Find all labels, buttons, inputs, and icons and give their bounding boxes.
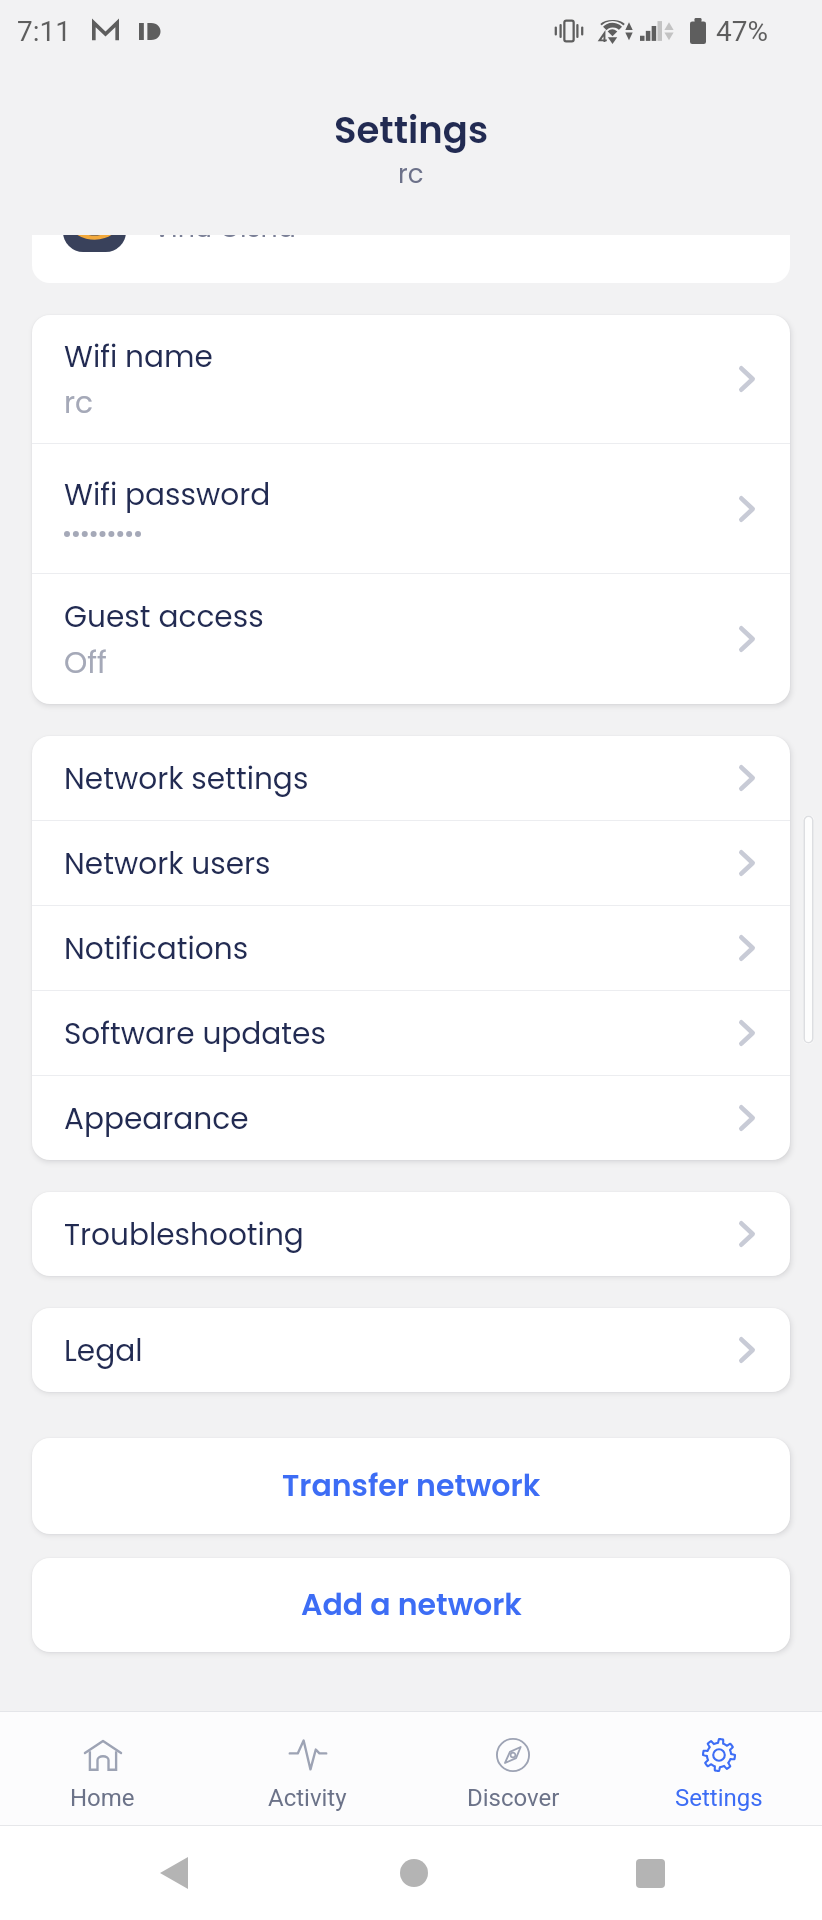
staticText: 47% — [716, 15, 768, 48]
staticText: Legal — [64, 1330, 739, 1371]
staticText: Settings — [334, 104, 489, 156]
staticText: Off — [64, 642, 107, 683]
button[interactable]: Legal — [32, 1308, 790, 1392]
button[interactable]: Guest access — [32, 574, 790, 704]
staticText: Transfer network — [282, 1465, 541, 1507]
button[interactable]: Recent apps — [603, 1826, 697, 1920]
button[interactable]: Appearance — [32, 1076, 790, 1160]
button[interactable]: Home — [367, 1826, 461, 1920]
button[interactable]: Software updates — [32, 991, 790, 1075]
staticText: Notifications — [64, 928, 739, 969]
staticText: Software updates — [64, 1013, 739, 1054]
staticText: Discover — [467, 1784, 560, 1812]
button[interactable]: Activity — [205, 1712, 410, 1825]
staticText: 7:11 — [17, 15, 71, 48]
button[interactable]: Back — [127, 1826, 221, 1920]
button[interactable]: Network users — [32, 821, 790, 905]
staticText: Activity — [268, 1784, 347, 1812]
button[interactable]: Notifications — [32, 906, 790, 990]
staticText: Add a network — [301, 1584, 522, 1626]
staticText: rc — [64, 382, 94, 423]
staticText: rc — [398, 156, 424, 192]
button[interactable]: Home — [0, 1712, 205, 1825]
button[interactable]: Troubleshooting — [32, 1192, 790, 1276]
staticText: Guest access — [64, 596, 264, 637]
staticText: Home — [70, 1784, 135, 1812]
staticText: Vinu Gisha — [153, 235, 296, 247]
button[interactable]: Discover — [410, 1712, 616, 1825]
staticText: Settings — [675, 1784, 763, 1812]
button[interactable]: Wifi name — [32, 315, 790, 443]
staticText: Troubleshooting — [64, 1214, 739, 1255]
button[interactable]: Vinu Gisha — [32, 235, 790, 283]
button[interactable]: Network settings — [32, 736, 790, 820]
staticText: Appearance — [64, 1098, 739, 1139]
button[interactable]: Wifi password — [32, 444, 790, 573]
staticText: Wifi name — [64, 336, 213, 377]
button[interactable]: Settings — [616, 1712, 822, 1825]
button[interactable]: Transfer network — [32, 1438, 790, 1534]
staticText: Wifi password — [64, 474, 271, 515]
staticText: Network settings — [64, 758, 739, 799]
button[interactable]: Add a network — [32, 1558, 790, 1652]
staticText: Network users — [64, 843, 739, 884]
